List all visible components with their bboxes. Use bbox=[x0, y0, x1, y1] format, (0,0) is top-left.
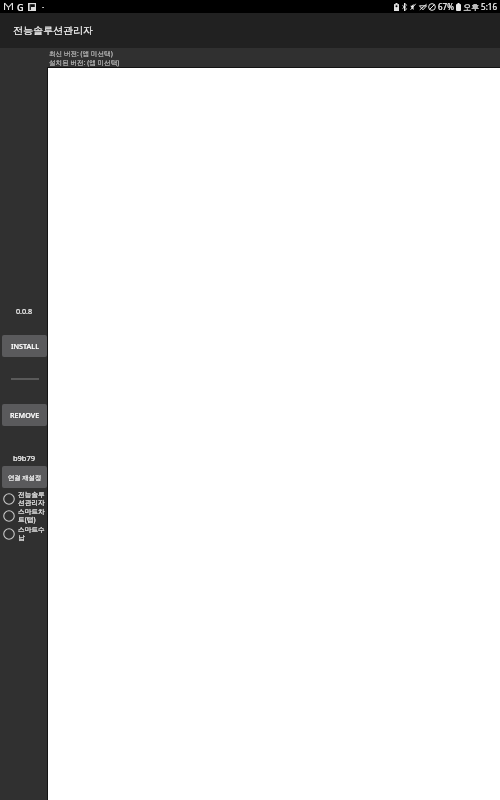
staticText: b9b79 bbox=[0, 453, 48, 463]
staticText: 스마트차트(탭) bbox=[18, 508, 47, 524]
other: Status bar bbox=[0, 0, 500, 13]
staticText: INSTALL bbox=[11, 341, 39, 351]
staticText: 최신 버전: (앱 미선택) bbox=[49, 49, 113, 58]
staticText: 0.0.8 bbox=[0, 306, 48, 316]
staticText: REMOVE bbox=[10, 410, 40, 420]
staticText: 설치된 버전: (앱 미선택) bbox=[49, 58, 120, 67]
staticText: 스마트수납 bbox=[18, 526, 47, 542]
button[interactable]: 스마트수납 bbox=[0, 525, 48, 543]
button[interactable]: REMOVE bbox=[2, 404, 47, 426]
button[interactable]: 스마트차트(탭) bbox=[0, 507, 48, 525]
staticText: 오후 5:16 bbox=[463, 1, 497, 12]
staticText: 전능솔루션관리자 bbox=[13, 24, 93, 37]
button[interactable]: 전능솔루션관리자 bbox=[0, 490, 48, 508]
staticText: - bbox=[42, 2, 45, 12]
button[interactable]: INSTALL bbox=[2, 335, 47, 357]
staticText: 전능솔루션관리자 bbox=[18, 491, 47, 507]
button[interactable]: 연결 재설정 bbox=[2, 466, 47, 488]
staticText: 연결 재설정 bbox=[8, 473, 42, 482]
staticText: 67% bbox=[438, 1, 454, 12]
staticText: G bbox=[17, 1, 24, 13]
